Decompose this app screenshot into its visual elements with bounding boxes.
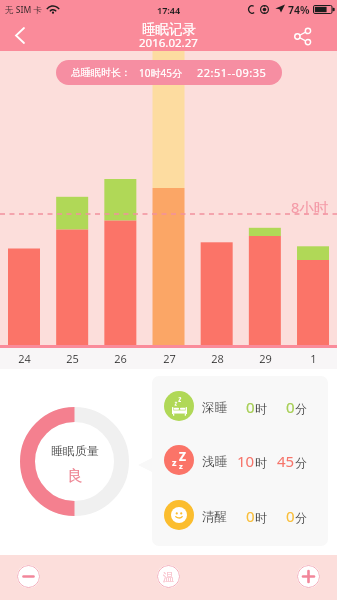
staticText: 28 xyxy=(211,351,224,366)
button[interactable]: Decrease xyxy=(17,565,40,588)
staticText: 温 xyxy=(163,570,174,584)
staticText: 浅睡 xyxy=(202,454,227,470)
staticText: 时 xyxy=(255,510,267,525)
staticText: 清醒 xyxy=(202,509,227,525)
staticText: 分 xyxy=(295,455,307,470)
staticText: 睡眠记录 xyxy=(142,21,196,38)
button[interactable]: Add record xyxy=(297,565,320,588)
button[interactable]: 总睡眠时长： xyxy=(56,60,282,85)
staticText: 时 xyxy=(255,455,267,470)
staticText: z xyxy=(172,456,177,468)
staticText: 深睡 xyxy=(202,400,227,416)
staticText: 无 SIM 卡 xyxy=(5,4,42,16)
staticText: 睡眠质量 xyxy=(51,443,99,458)
button[interactable]: 清醒 xyxy=(152,500,328,530)
staticText: 1 xyxy=(310,351,317,366)
staticText: 10 xyxy=(237,451,255,471)
staticText: 0 xyxy=(286,506,295,526)
staticText: 0 xyxy=(286,397,295,417)
staticText: 分 xyxy=(295,510,307,525)
staticText: 良 xyxy=(67,466,83,486)
staticText: Z xyxy=(179,448,186,464)
button[interactable]: 深睡 xyxy=(152,391,328,421)
staticText: 74% xyxy=(288,3,310,17)
staticText: 26 xyxy=(114,351,127,366)
staticText: 27 xyxy=(163,351,176,366)
button[interactable]: Share xyxy=(287,21,317,51)
button[interactable]: Back xyxy=(5,20,35,50)
staticText: 时 xyxy=(255,401,267,416)
staticText: 17:44 xyxy=(157,4,181,16)
staticText: 10时45分 xyxy=(139,66,182,80)
staticText: 22:51--09:35 xyxy=(197,65,267,80)
staticText: 25 xyxy=(66,351,79,366)
staticText: 分 xyxy=(295,401,307,416)
staticText: 0 xyxy=(246,397,255,417)
staticText: z xyxy=(179,461,183,471)
staticText: 45 xyxy=(277,451,295,471)
staticText: 29 xyxy=(259,351,272,366)
button[interactable]: 浅睡 xyxy=(152,445,328,475)
staticText: 0 xyxy=(246,506,255,526)
staticText: 2016.02.27 xyxy=(139,35,198,51)
staticText: 8小时 xyxy=(291,197,329,217)
button[interactable]: Temperature xyxy=(157,565,180,588)
staticText: 总睡眠时长： xyxy=(71,66,131,79)
staticText: 24 xyxy=(18,351,31,366)
